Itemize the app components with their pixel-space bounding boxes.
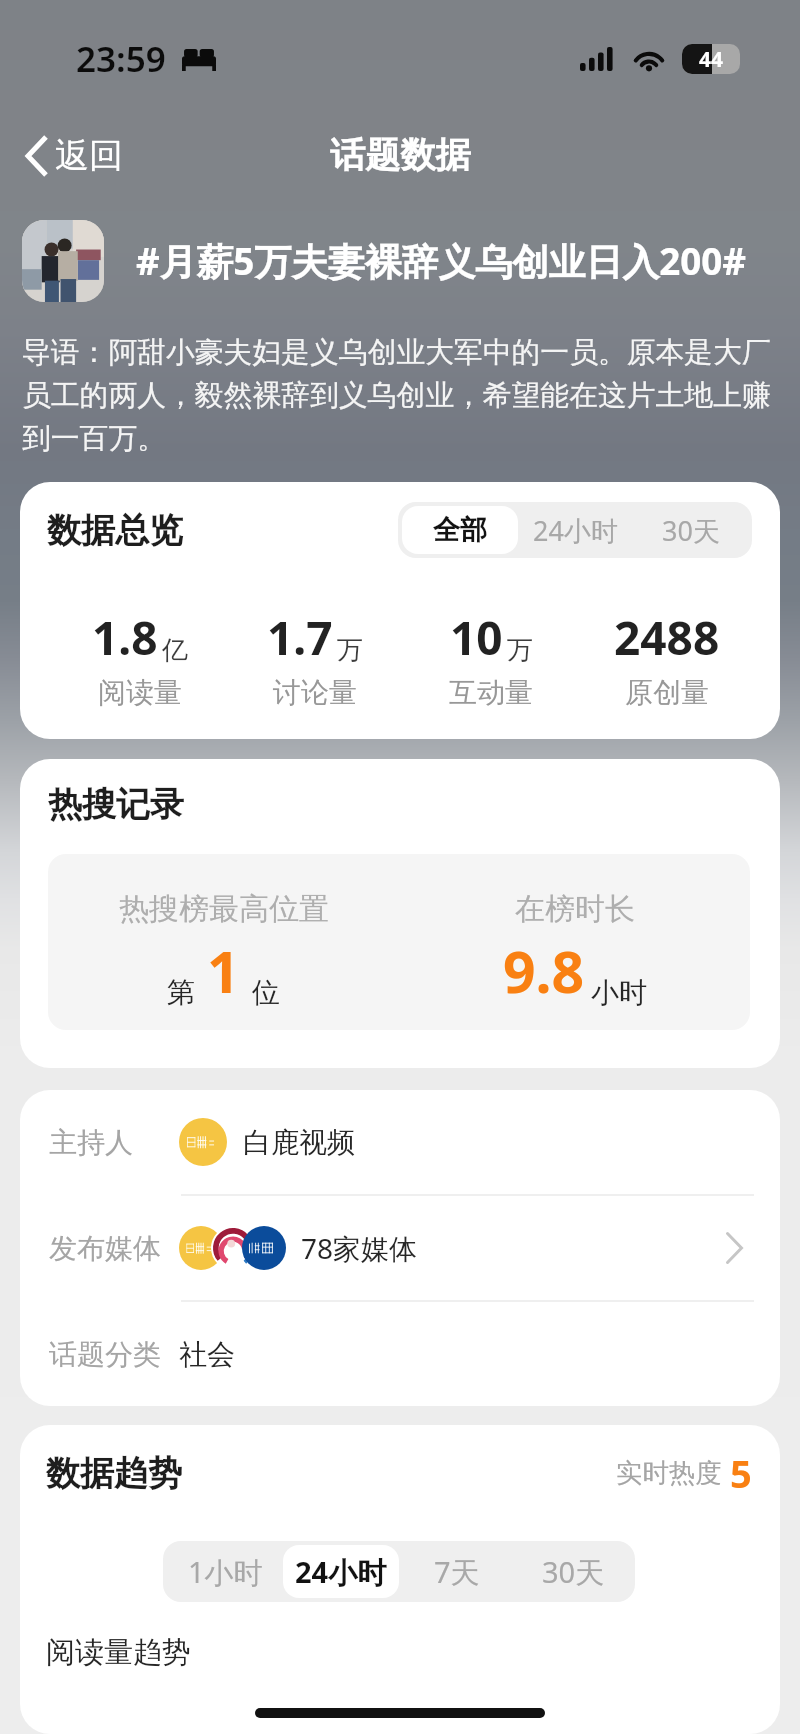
staticText: 讨论量: [273, 675, 357, 710]
staticText: 24小时: [295, 1552, 387, 1592]
staticText: 1.8: [92, 606, 158, 669]
staticText: 在榜时长: [515, 890, 635, 928]
staticText: 30天: [662, 512, 720, 549]
button[interactable]: 24小时: [283, 1545, 399, 1598]
staticText: 白鹿视频: [243, 1125, 355, 1160]
staticText: 44: [699, 45, 724, 74]
button[interactable]: 30天: [633, 506, 748, 554]
staticText: 1.7: [267, 606, 333, 669]
button[interactable]: 1小时: [167, 1545, 283, 1598]
staticText: #月薪5万夫妻裸辞义乌创业日入200#: [136, 236, 747, 286]
staticText: 阅读量趋势: [46, 1634, 191, 1671]
staticText: 实时热度: [616, 1457, 722, 1490]
button[interactable]: 返回: [16, 124, 133, 187]
button[interactable]: 话题封面图片: [22, 220, 104, 302]
staticText: 数据趋势: [46, 1452, 182, 1495]
staticText: 数据总览: [47, 509, 183, 552]
staticText: 热搜记录: [48, 783, 184, 826]
staticText: 位: [252, 975, 280, 1010]
staticText: 2488: [614, 606, 720, 669]
button[interactable]: 24小时: [518, 506, 633, 554]
button[interactable]: 30天: [515, 1545, 631, 1598]
staticText: 话题分类: [49, 1337, 161, 1372]
staticText: 发布媒体: [49, 1231, 161, 1266]
staticText: 返回: [55, 134, 123, 177]
staticText: 全部: [433, 513, 487, 547]
staticText: 万: [507, 634, 533, 667]
staticText: 热搜榜最高位置: [119, 890, 329, 928]
button[interactable]: 发布媒体: [49, 1196, 754, 1300]
staticText: 导语：阿甜小豪夫妇是义乌创业大军中的一员。原本是大厂员工的两人，毅然裸辞到义乌创…: [22, 334, 782, 457]
staticText: 第: [167, 975, 195, 1010]
staticText: 10: [450, 606, 503, 669]
staticText: 万: [337, 634, 363, 667]
staticText: 社会: [179, 1337, 235, 1372]
staticText: 1: [207, 932, 240, 1010]
staticText: 7天: [434, 1552, 480, 1592]
staticText: 互动量: [449, 675, 533, 710]
staticText: 主持人: [49, 1125, 133, 1160]
staticText: 1小时: [188, 1552, 263, 1592]
button[interactable]: 全部: [402, 506, 518, 554]
staticText: 阅读量: [98, 675, 182, 710]
staticText: 78家媒体: [301, 1229, 418, 1267]
staticText: 亿: [162, 634, 188, 667]
staticText: 30天: [542, 1552, 605, 1592]
staticText: 原创量: [625, 675, 709, 710]
staticText: 23:59: [76, 35, 166, 83]
button[interactable]: 7天: [399, 1545, 515, 1598]
other: 查看全部媒体: [714, 1228, 754, 1268]
staticText: 24小时: [533, 512, 618, 549]
staticText: 小时: [591, 975, 647, 1010]
staticText: 5: [730, 1447, 752, 1499]
staticText: 话题数据: [330, 133, 471, 177]
staticText: 9.8: [503, 932, 585, 1010]
